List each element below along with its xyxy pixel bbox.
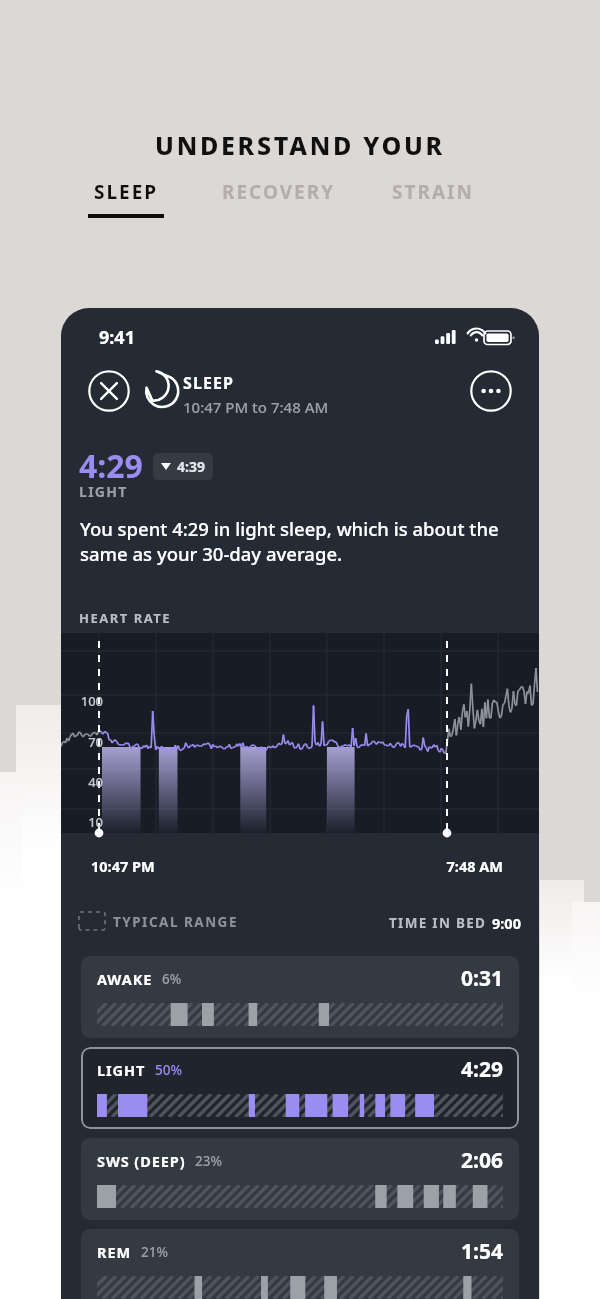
button[interactable]: SWS (DEEP) (81, 1138, 519, 1220)
staticText: REM (97, 1242, 132, 1262)
staticText: 23% (195, 1152, 222, 1170)
staticText: 1:54 (399, 1237, 503, 1266)
staticText: 7:48 AM (381, 856, 503, 876)
staticText: TIME IN BED (389, 914, 492, 932)
staticText: TYPICAL RANGE (113, 913, 238, 931)
staticText: 50% (155, 1061, 182, 1079)
staticText: 70 (71, 733, 103, 751)
staticText: 10:47 PM (91, 856, 155, 876)
button[interactable]: REM (81, 1229, 519, 1299)
button[interactable]: LIGHT (81, 1047, 519, 1129)
staticText: AWAKE (97, 969, 153, 989)
staticText: UNDERSTAND YOUR (0, 128, 600, 162)
button[interactable]: More options (470, 370, 512, 412)
staticText: You spent 4:29 in light sleep, which is … (80, 516, 504, 567)
staticText: HEART RATE (79, 609, 172, 627)
staticText: 21% (141, 1243, 168, 1261)
staticText: 10 (71, 813, 103, 831)
staticText: SLEEP (94, 179, 159, 205)
staticText: 4:29 (79, 444, 143, 488)
staticText: 100 (71, 692, 103, 710)
staticText: 4:29 (399, 1055, 503, 1084)
staticText: 4:39 (177, 457, 205, 476)
staticText: SLEEP (183, 372, 235, 394)
button[interactable]: RECOVERY (222, 179, 336, 205)
staticText: 9:41 (99, 325, 135, 350)
button[interactable]: 4:39 (153, 453, 213, 480)
staticText: 9:00 (492, 913, 521, 933)
staticText: LIGHT (97, 1060, 146, 1080)
button[interactable]: SLEEP (88, 179, 164, 218)
staticText: 10:47 PM to 7:48 AM (183, 397, 329, 417)
button[interactable]: STRAIN (392, 179, 474, 205)
staticText: LIGHT (79, 482, 128, 501)
button[interactable]: Close (88, 370, 130, 412)
staticText: SWS (DEEP) (97, 1151, 186, 1171)
staticText: 2:06 (399, 1146, 503, 1175)
staticText: 40 (71, 773, 103, 791)
button[interactable]: AWAKE (81, 956, 519, 1038)
staticText: 0:31 (399, 964, 503, 993)
staticText: STRAIN (392, 179, 474, 205)
staticText: 6% (162, 970, 182, 988)
staticText: RECOVERY (222, 179, 336, 205)
